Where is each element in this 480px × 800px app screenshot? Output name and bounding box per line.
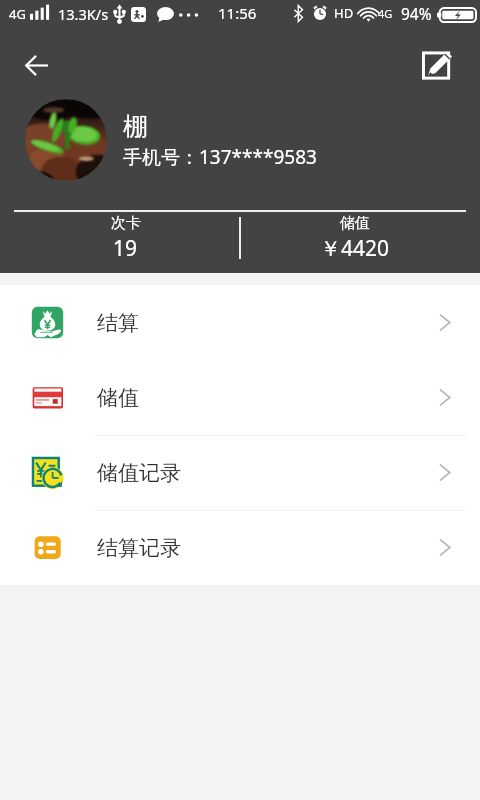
staticText: 4G	[9, 5, 26, 23]
staticText: HD	[334, 4, 354, 22]
staticText: 结算记录	[97, 535, 181, 561]
staticText: ￥4420	[320, 234, 390, 263]
staticText: 13.3K/s	[58, 4, 109, 24]
staticText: 储值	[97, 385, 139, 411]
button[interactable]: 储值	[0, 360, 480, 435]
button[interactable]: 储值记录	[0, 435, 480, 510]
staticText: 储值	[340, 214, 370, 233]
button[interactable]: Back	[12, 40, 62, 90]
button[interactable]: Edit	[406, 40, 466, 92]
staticText: 11:56	[218, 3, 257, 23]
staticText: 4G	[378, 6, 393, 21]
staticText: 结算	[97, 310, 139, 336]
staticText: 储值记录	[97, 460, 181, 486]
button[interactable]: 结算记录	[0, 510, 480, 585]
staticText: 次卡	[111, 214, 141, 233]
staticText: 94%	[401, 3, 432, 24]
staticText: 19	[113, 234, 138, 263]
staticText: 棚	[123, 111, 148, 142]
button[interactable]: 结算	[0, 285, 480, 360]
staticText: 手机号：137****9583	[123, 144, 317, 170]
